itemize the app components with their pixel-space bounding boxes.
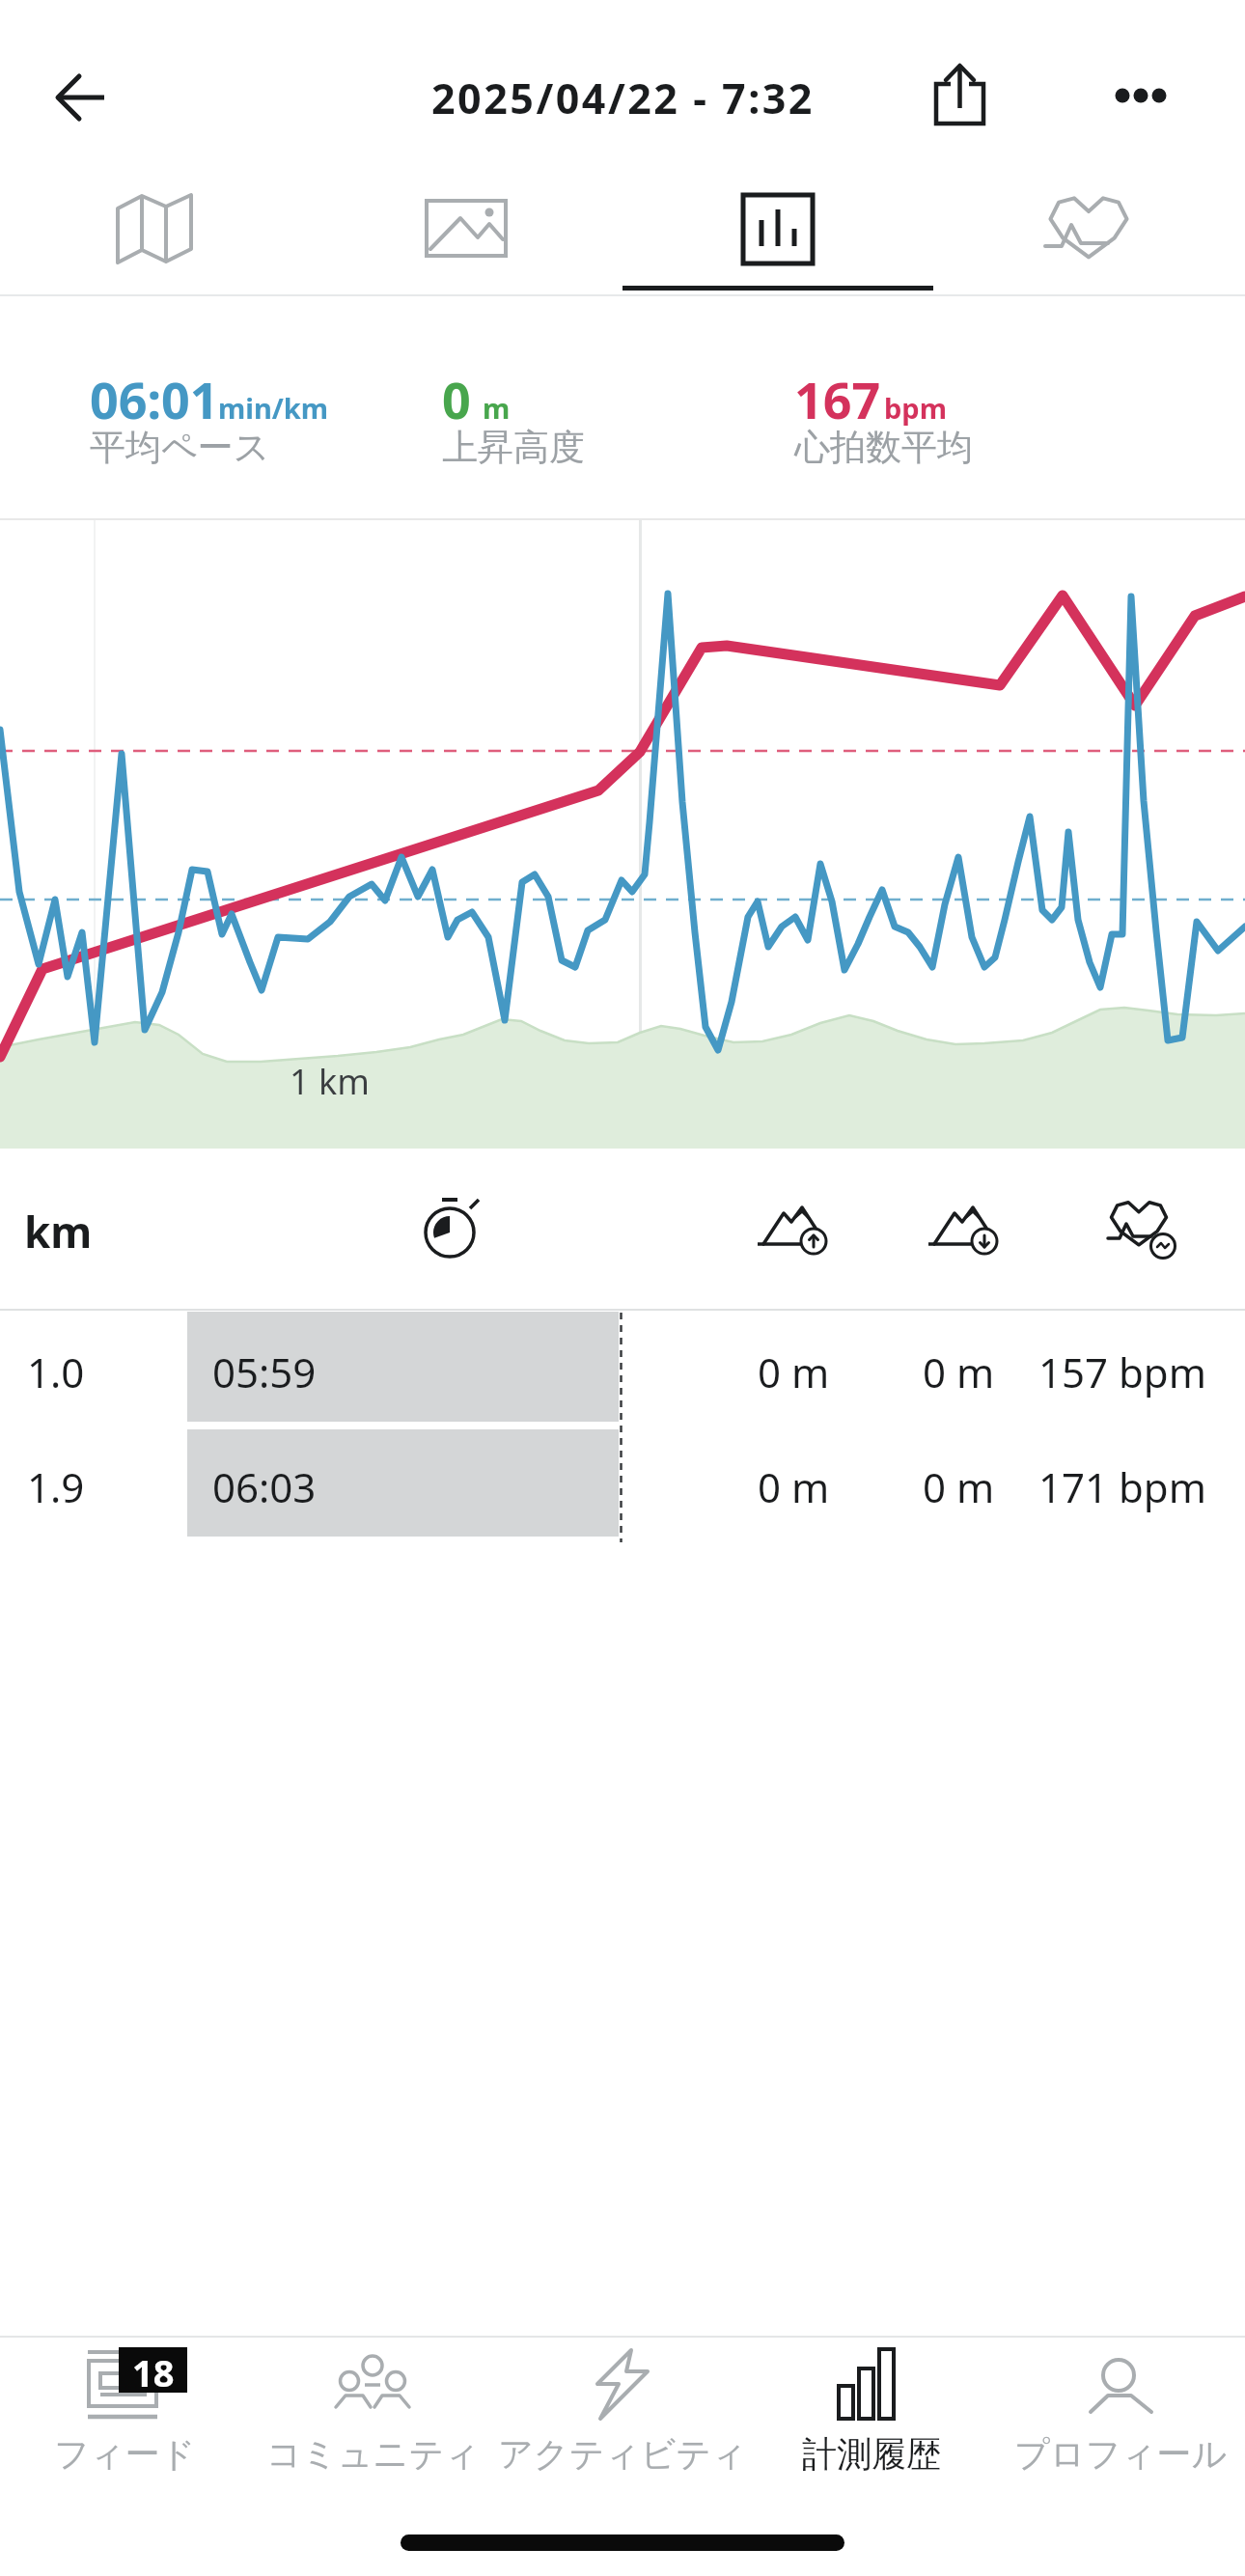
- staticText: m: [483, 389, 511, 427]
- staticText: 2025/04/22 - 7:32: [431, 69, 815, 126]
- staticText: 計測履歴: [802, 2432, 941, 2476]
- button[interactable]: [0, 2338, 249, 2492]
- staticText: 06:03: [212, 1459, 317, 1514]
- staticText: min/km: [218, 389, 329, 427]
- button[interactable]: [0, 1311, 1245, 1426]
- staticText: フィード: [54, 2432, 196, 2476]
- staticText: 1 km: [290, 1058, 370, 1105]
- button[interactable]: [932, 166, 1243, 293]
- staticText: 171 bpm: [1038, 1459, 1206, 1514]
- staticText: 06:01: [90, 365, 219, 433]
- staticText: 0 m: [923, 1459, 995, 1514]
- staticText: プロフィール: [1014, 2432, 1228, 2476]
- staticText: 上昇高度: [442, 425, 585, 470]
- button[interactable]: [1076, 43, 1202, 145]
- button[interactable]: [622, 166, 932, 293]
- button[interactable]: [311, 166, 622, 293]
- staticText: km: [24, 1203, 93, 1260]
- staticText: 0: [442, 365, 471, 433]
- button[interactable]: [29, 48, 135, 145]
- staticText: 167: [794, 365, 881, 433]
- staticText: 心拍数平均: [794, 425, 973, 470]
- button[interactable]: [249, 2338, 498, 2492]
- button[interactable]: [0, 166, 311, 293]
- staticText: bpm: [884, 389, 947, 427]
- button[interactable]: [747, 2338, 996, 2492]
- staticText: 0 m: [758, 1459, 830, 1514]
- button[interactable]: [996, 2338, 1245, 2492]
- button[interactable]: [0, 1426, 1245, 1542]
- staticText: コミュニティ: [266, 2432, 481, 2476]
- staticText: 05:59: [212, 1344, 317, 1399]
- staticText: アクティビティ: [498, 2432, 747, 2476]
- staticText: 平均ペース: [90, 425, 270, 470]
- staticText: 0 m: [923, 1344, 995, 1399]
- button[interactable]: [902, 43, 1013, 145]
- staticText: 157 bpm: [1038, 1344, 1206, 1399]
- staticText: 1.9: [27, 1459, 85, 1514]
- staticText: 0 m: [758, 1344, 830, 1399]
- staticText: 1.0: [27, 1344, 85, 1399]
- button[interactable]: [498, 2338, 747, 2492]
- staticText: 18: [132, 2347, 175, 2393]
